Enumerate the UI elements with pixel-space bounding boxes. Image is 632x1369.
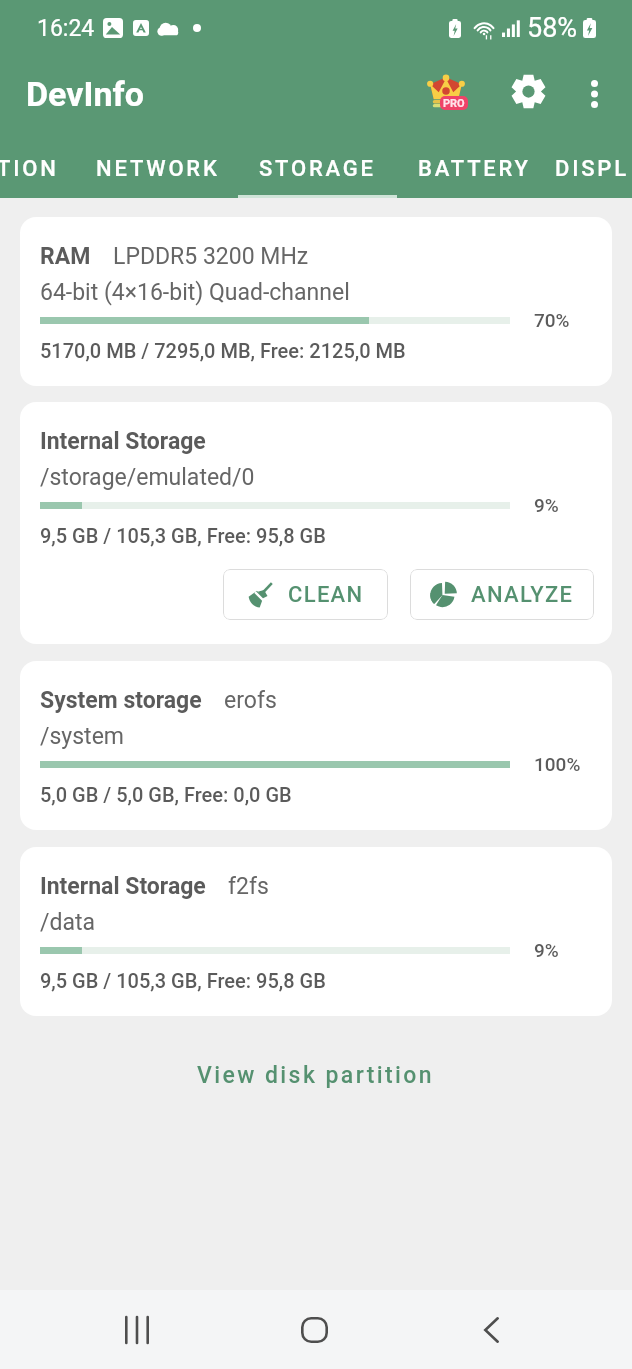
staticText: LPDDR5 3200 MHz	[113, 243, 309, 270]
staticText: NETWORK	[96, 156, 220, 182]
button[interactable]: CLEAN	[223, 569, 388, 620]
staticText: PRO	[443, 97, 465, 110]
staticText: View disk partition	[197, 1062, 435, 1089]
staticText: 16:24	[37, 15, 95, 42]
button[interactable]: View disk partition	[181, 1056, 451, 1095]
button[interactable]: Internal Storage	[20, 847, 612, 1016]
button[interactable]: Back	[440, 1290, 542, 1369]
button[interactable]: Internal Storage	[20, 402, 612, 644]
button[interactable]: Upgrade to PRO	[418, 64, 478, 124]
staticText: 9,5 GB / 105,3 GB, Free: 95,8 GB	[40, 524, 326, 547]
staticText: STORAGE	[259, 156, 376, 182]
staticText: DevInfo	[26, 74, 144, 114]
button[interactable]: System storage	[20, 661, 612, 830]
staticText: 64-bit (4×16-bit) Quad-channel	[40, 279, 350, 306]
staticText: 9%	[534, 494, 559, 516]
button[interactable]: More options	[568, 68, 620, 120]
button[interactable]: RAM	[20, 217, 612, 386]
staticText: BATTERY	[418, 156, 531, 182]
staticText: 9%	[534, 939, 559, 961]
staticText: TION	[0, 156, 59, 182]
button[interactable]: Home	[263, 1290, 365, 1369]
button[interactable]: DISPL	[551, 140, 632, 198]
button[interactable]: STORAGE	[238, 140, 397, 198]
staticText: CLEAN	[288, 582, 364, 608]
staticText: ANALYZE	[471, 582, 574, 608]
staticText: 5,0 GB / 5,0 GB, Free: 0,0 GB	[40, 783, 292, 806]
staticText: 5170,0 MB / 7295,0 MB, Free: 2125,0 MB	[40, 339, 406, 362]
staticText: f2fs	[228, 873, 269, 900]
staticText: 100%	[534, 753, 581, 775]
button[interactable]: BATTERY	[397, 140, 551, 198]
staticText: 58%	[527, 12, 578, 44]
staticText: 9,5 GB / 105,3 GB, Free: 95,8 GB	[40, 969, 326, 992]
staticText: System storage	[40, 687, 202, 714]
button[interactable]: NETWORK	[77, 140, 238, 198]
staticText: Internal Storage	[40, 873, 206, 900]
staticText: /storage/emulated/0	[40, 464, 255, 491]
button[interactable]: ANALYZE	[410, 569, 594, 620]
button[interactable]: TION	[0, 140, 77, 198]
staticText: RAM	[40, 243, 91, 270]
button[interactable]: Recents	[86, 1290, 188, 1369]
staticText: Internal Storage	[40, 428, 206, 455]
staticText: DISPL	[555, 156, 629, 182]
staticText: erofs	[224, 687, 277, 714]
staticText: /system	[40, 723, 125, 750]
staticText: /data	[40, 909, 96, 936]
staticText: 70%	[534, 309, 570, 331]
button[interactable]: Settings	[502, 68, 554, 120]
